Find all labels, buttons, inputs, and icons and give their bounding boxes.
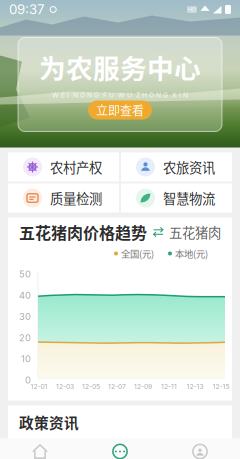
staticText: 质量检测 xyxy=(50,188,102,208)
button[interactable]: Profile xyxy=(160,438,240,459)
staticText: 农村产权 xyxy=(50,157,102,177)
staticText: 12-15 xyxy=(212,382,229,391)
staticText: 12-11 xyxy=(161,382,177,391)
staticText: 09:37 xyxy=(9,1,45,17)
button[interactable]: 农村产权 xyxy=(8,152,119,181)
staticText: 20 xyxy=(19,332,31,343)
staticText: 立即查看 xyxy=(96,101,144,119)
staticText: 0 xyxy=(25,374,31,386)
staticText: 12-05 xyxy=(82,382,100,391)
button[interactable]: 立即查看 xyxy=(88,100,152,119)
staticText: 40 xyxy=(19,290,31,301)
staticText: W E I N O N G F U W U Z H O N G X I N xyxy=(52,91,188,99)
staticText: 全国(元) xyxy=(121,247,154,260)
staticText: 12-07 xyxy=(108,382,126,391)
staticText: 12-03 xyxy=(56,382,74,391)
button[interactable]: 质量检测 xyxy=(8,183,119,212)
staticText: 智慧物流 xyxy=(163,188,215,208)
staticText: 五花猪肉价格趋势 xyxy=(19,220,147,244)
staticText: 12-01 xyxy=(30,382,47,391)
button[interactable]: Messages xyxy=(80,438,160,459)
button[interactable]: Home xyxy=(0,438,80,459)
staticText: 本地(元) xyxy=(175,247,208,260)
staticText: 30 xyxy=(19,311,31,322)
staticText: 12-09 xyxy=(134,382,152,391)
button[interactable]: 农旅资讯 xyxy=(121,152,232,181)
staticText: 政策资讯 xyxy=(19,411,79,433)
staticText: 12-13 xyxy=(186,382,203,391)
staticText: 五花猪肉 xyxy=(169,222,221,242)
staticText: 50 xyxy=(19,268,31,280)
staticText: 农旅资讯 xyxy=(163,157,215,177)
button[interactable]: 智慧物流 xyxy=(121,183,232,212)
staticText: 10 xyxy=(21,353,31,365)
staticText: 为农服务中心 xyxy=(39,47,201,86)
staticText: HD xyxy=(188,6,196,13)
button[interactable]: 五花猪肉 xyxy=(153,222,221,242)
